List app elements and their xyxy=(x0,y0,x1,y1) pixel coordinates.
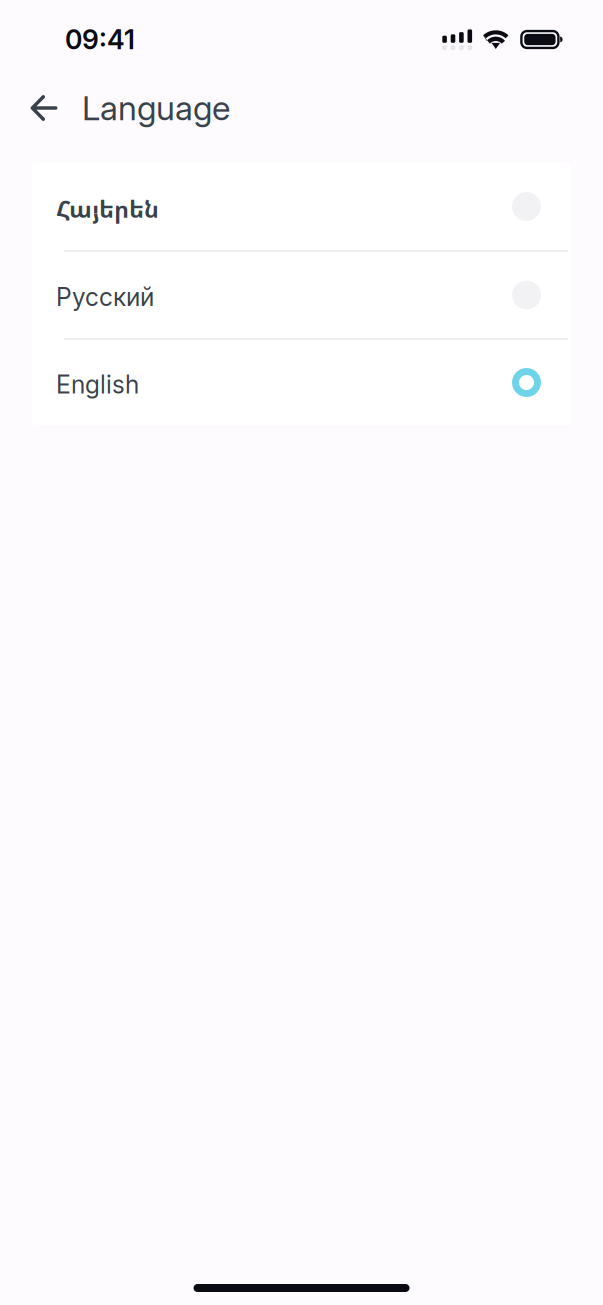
staticText: Language xyxy=(82,88,230,128)
staticText: English xyxy=(56,370,139,399)
staticText: Русский xyxy=(56,282,154,312)
staticText: 09:41 xyxy=(65,23,135,56)
button[interactable]: Հայերեն xyxy=(32,163,571,252)
staticText: Հայերեն xyxy=(56,192,159,225)
button[interactable]: Русский xyxy=(32,252,571,340)
button[interactable]: Back xyxy=(16,80,72,136)
button[interactable]: English xyxy=(32,340,571,425)
